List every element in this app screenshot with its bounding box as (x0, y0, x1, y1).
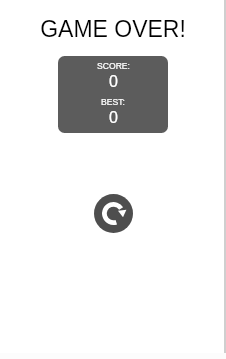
button[interactable]: SCORE: (58, 56, 168, 133)
staticText: 0 (109, 73, 118, 91)
button[interactable]: Replay (94, 194, 133, 233)
staticText: BEST: (101, 97, 125, 107)
staticText: 0 (109, 109, 118, 127)
staticText: GAME OVER! (40, 16, 186, 42)
staticText: SCORE: (97, 61, 130, 71)
